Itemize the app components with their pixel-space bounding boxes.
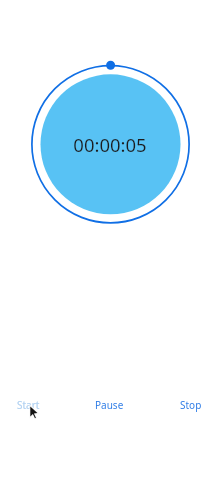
button[interactable]: Pause — [86, 395, 133, 415]
staticText: Stop — [180, 398, 202, 412]
button[interactable]: Stop — [167, 395, 215, 415]
staticText: 00:00:05 — [73, 132, 147, 157]
button[interactable]: Start — [4, 395, 52, 415]
staticText: Pause — [95, 398, 124, 412]
staticText: Start — [17, 398, 40, 412]
